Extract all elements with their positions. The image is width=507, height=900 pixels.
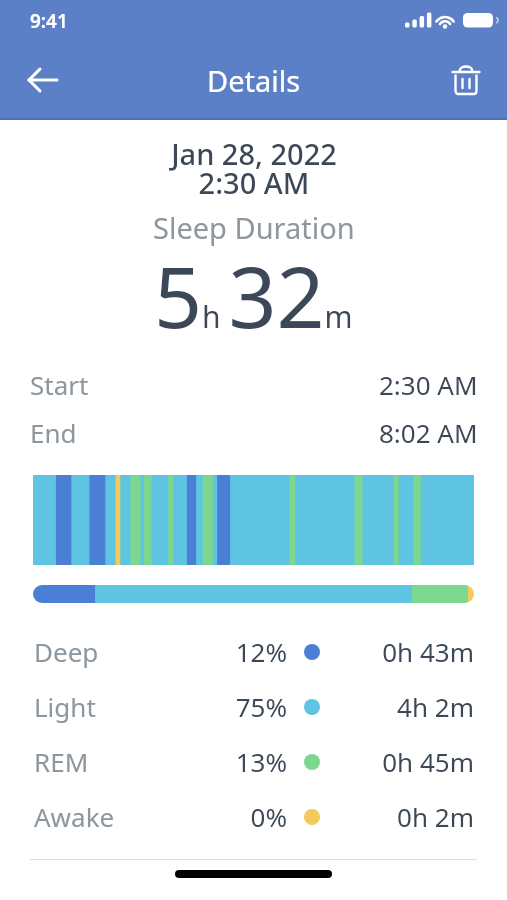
staticText: 4h 2m	[320, 689, 474, 724]
staticText: Details	[207, 61, 301, 100]
staticText: Jan 28, 2022 2:30 AM	[171, 134, 337, 202]
staticText: 8:02 AM	[379, 415, 478, 450]
staticText: 5h 32m	[154, 238, 353, 343]
staticText: Deep	[34, 634, 188, 669]
staticText: Sleep Duration	[153, 208, 355, 247]
button[interactable]	[443, 57, 489, 103]
staticText: 0h 43m	[320, 634, 474, 669]
staticText: 9:41	[30, 8, 68, 34]
staticText: End	[30, 415, 379, 450]
button[interactable]	[20, 57, 66, 103]
staticText: 0h 2m	[320, 799, 474, 834]
staticText: 75%	[188, 689, 287, 724]
staticText: 2:30 AM	[379, 367, 478, 402]
button[interactable]: REM	[34, 734, 474, 789]
staticText: Light	[34, 689, 188, 724]
staticText: 0h 45m	[320, 744, 474, 779]
staticText: 12%	[188, 634, 287, 669]
button[interactable]: Deep	[34, 624, 474, 679]
staticText: Awake	[34, 799, 188, 834]
button[interactable]: Awake	[34, 789, 474, 844]
button[interactable]: Light	[34, 679, 474, 734]
staticText: REM	[34, 744, 188, 779]
staticText: Start	[30, 367, 379, 402]
staticText: 13%	[188, 744, 287, 779]
staticText: 0%	[188, 799, 287, 834]
